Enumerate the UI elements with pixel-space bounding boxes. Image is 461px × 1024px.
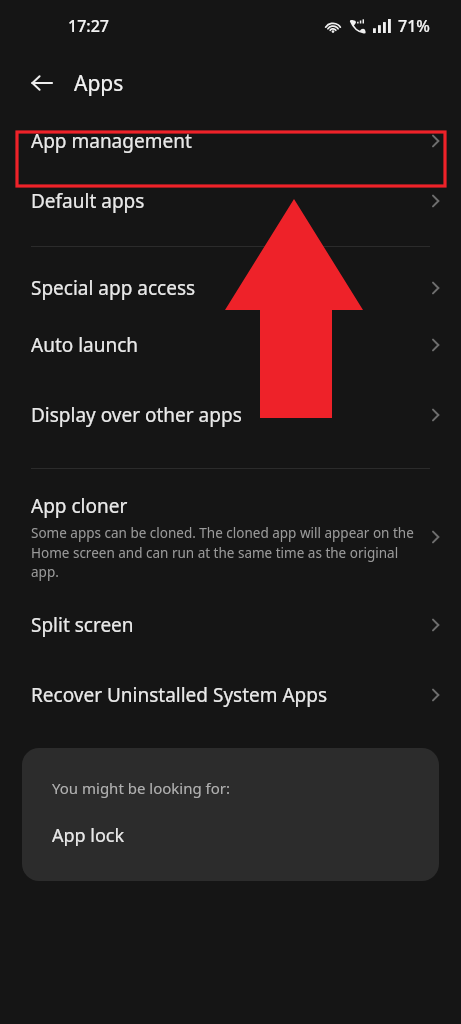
button[interactable]: Display over other apps (0, 381, 461, 449)
button[interactable]: App cloner (0, 485, 461, 589)
button[interactable]: Special app access (0, 267, 461, 309)
button[interactable]: Split screen (0, 589, 461, 661)
staticText: Auto launch (31, 332, 139, 358)
button[interactable]: Auto launch (0, 309, 461, 381)
button[interactable]: Recover Uninstalled System Apps (0, 661, 461, 729)
button[interactable]: App management (0, 114, 461, 168)
staticText: 17:27 (68, 15, 109, 37)
staticText: App cloner (31, 493, 128, 519)
staticText: App lock (52, 823, 125, 848)
staticText: 71% (398, 15, 430, 37)
staticText: Apps (74, 69, 124, 98)
button[interactable]: Back (20, 61, 64, 105)
staticText: Recover Uninstalled System Apps (31, 682, 328, 708)
staticText: Split screen (31, 612, 134, 638)
staticText: Default apps (31, 188, 145, 214)
staticText: Some apps can be cloned. The cloned app … (31, 524, 417, 581)
button[interactable]: Default apps (0, 168, 461, 234)
staticText: Special app access (31, 275, 196, 301)
staticText: Display over other apps (31, 402, 242, 428)
staticText: You might be looking for: (52, 778, 231, 798)
button[interactable]: You might be looking for: (22, 748, 439, 881)
staticText: App management (31, 128, 192, 154)
